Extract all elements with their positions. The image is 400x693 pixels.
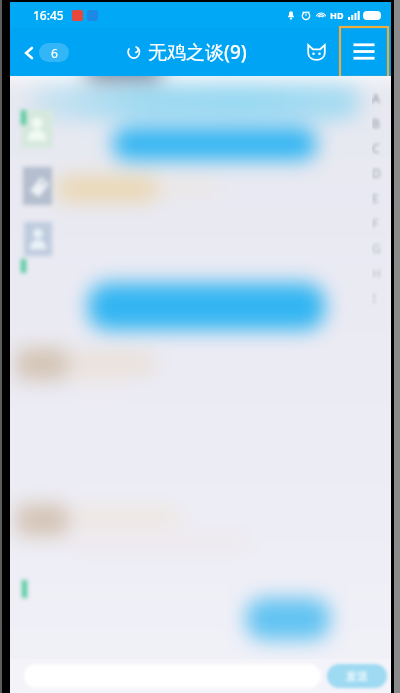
staticText: G xyxy=(372,240,386,256)
button[interactable]: Menu xyxy=(340,28,388,76)
staticText: 16:45 xyxy=(33,7,64,23)
staticText: D xyxy=(372,165,386,181)
staticText: HD xyxy=(330,9,344,21)
staticText: 发送 xyxy=(346,669,368,683)
button[interactable]: Group pet xyxy=(305,41,328,64)
staticText: F xyxy=(372,215,386,231)
button[interactable]: 发送 xyxy=(327,664,387,688)
staticText: C xyxy=(372,140,386,156)
staticText: 无鸡之谈(9) xyxy=(148,39,247,65)
staticText: H xyxy=(372,265,386,281)
staticText: I xyxy=(372,290,386,306)
button[interactable]: Back xyxy=(20,43,69,62)
staticText: B xyxy=(372,115,386,131)
staticText: 6 xyxy=(51,45,58,61)
staticText: A xyxy=(372,90,386,106)
staticText: E xyxy=(372,190,386,206)
